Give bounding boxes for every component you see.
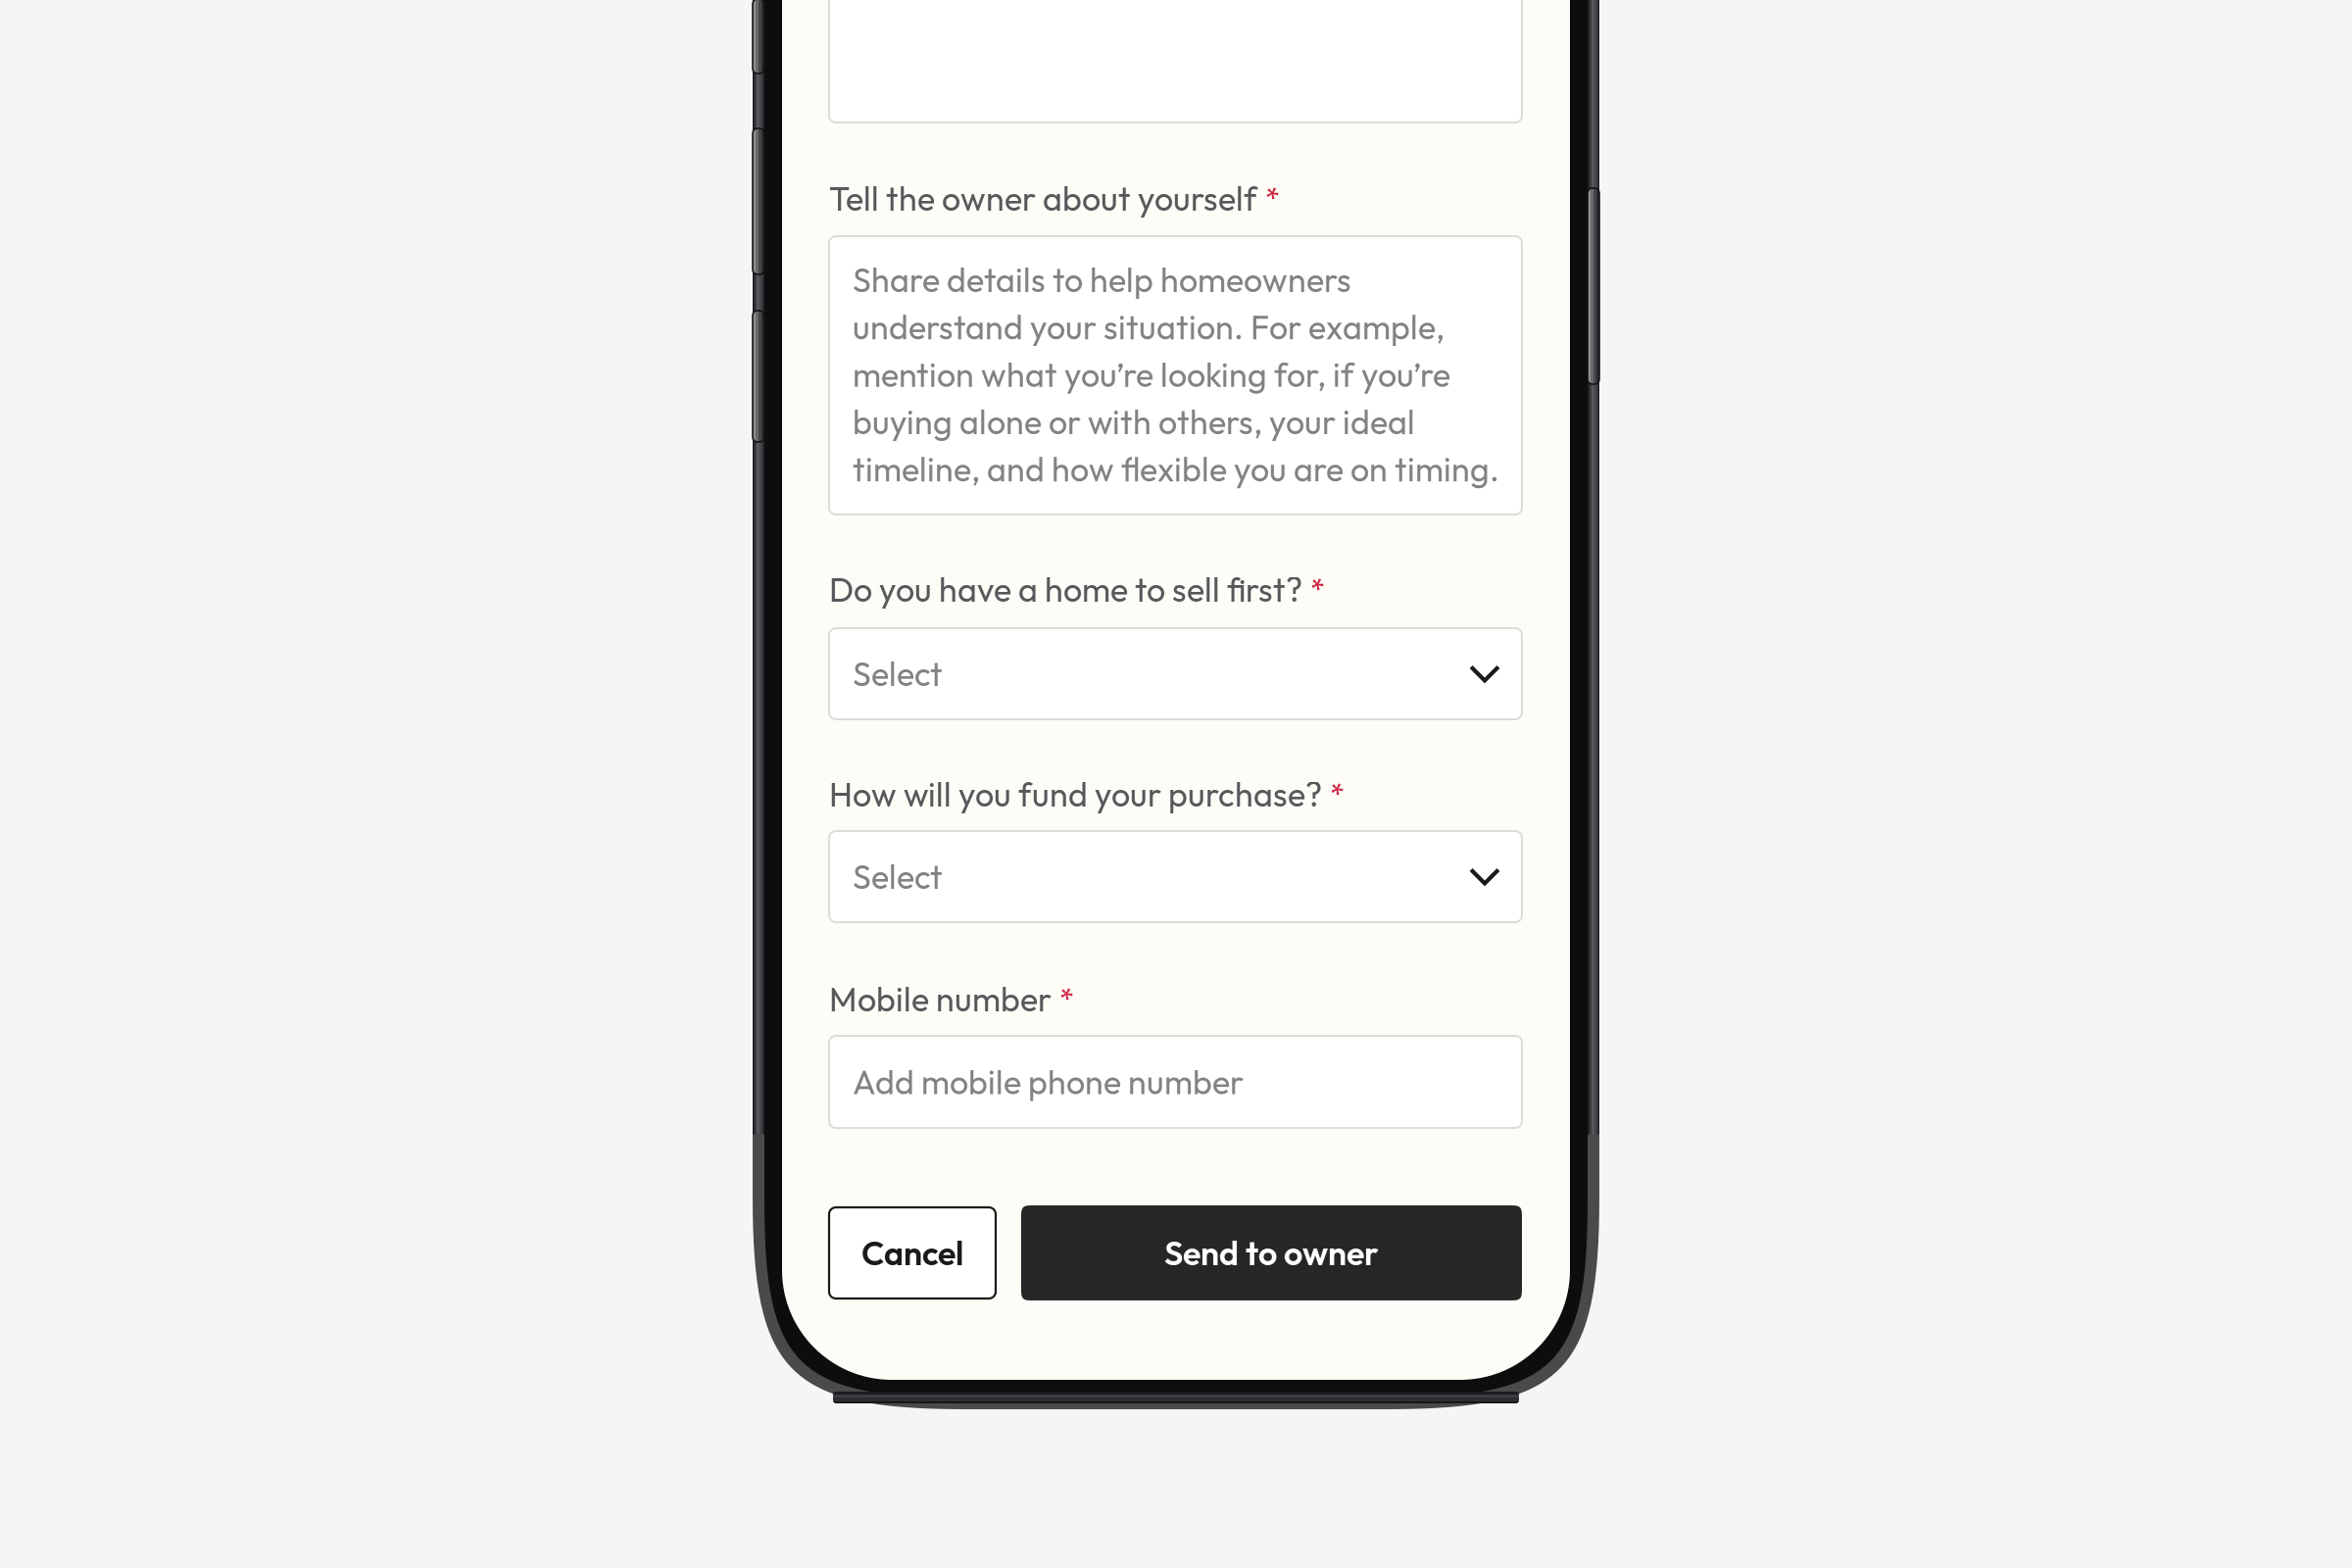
staticText: Share details to help homeowners underst… <box>853 259 1499 490</box>
button[interactable]: Share details to help homeowners underst… <box>829 236 1522 514</box>
button[interactable]: Cancel <box>829 1207 996 1298</box>
staticText: * <box>1059 980 1074 1018</box>
button[interactable]: Do you have a home to sell first? <box>829 628 1522 719</box>
staticText: Select <box>853 653 943 695</box>
staticText: * <box>1310 571 1325 608</box>
staticText: Do you have a home to sell first? <box>829 568 1302 610</box>
staticText: Cancel <box>861 1232 963 1274</box>
button[interactable]: Send to owner <box>1021 1205 1522 1300</box>
staticText: Select <box>853 856 943 898</box>
staticText: * <box>1330 775 1345 813</box>
staticText: How will you fund your purchase? <box>829 773 1322 815</box>
staticText: Add mobile phone number <box>853 1061 1244 1103</box>
button[interactable]: Mobile number <box>829 1036 1522 1128</box>
staticText: Send to owner <box>1164 1232 1379 1274</box>
button[interactable]: How will you fund your purchase? <box>829 831 1522 922</box>
staticText: Tell the owner about yourself <box>829 177 1257 219</box>
staticText: * <box>1265 180 1280 217</box>
staticText: Mobile number <box>829 978 1052 1020</box>
